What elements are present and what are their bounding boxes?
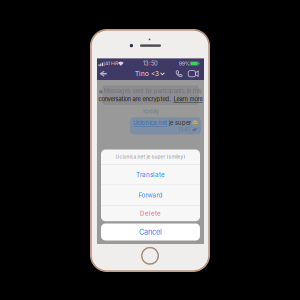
button[interactable]: Back [100,71,107,77]
button[interactable]: Forward [101,185,200,205]
staticText: 13:50 [143,60,158,67]
button[interactable]: Cancel [101,223,200,240]
staticText: Messages sent by participants in this [104,88,202,95]
staticText: Tino <3 [135,70,159,77]
staticText: Translate [136,171,165,178]
staticText: Ucionica.net [133,119,167,127]
button[interactable]: Voice call [175,70,182,77]
staticText: Ucionica.net je super (smiley) [115,154,185,160]
staticText: 13:47 [179,127,191,132]
staticText: Forward [138,191,162,199]
staticText: Cancel [139,228,162,236]
button[interactable]: Delete [101,206,200,221]
button[interactable]: Tino <3 [133,69,167,78]
staticText: Today [142,108,159,115]
staticText: Delete [140,210,161,217]
button[interactable]: Video call [188,71,198,77]
staticText: je super [169,119,191,127]
staticText: 99% [179,60,190,67]
button[interactable]: Translate [101,165,200,185]
staticText: A1 HR [105,60,118,67]
staticText: conversation are encrypted. Learn more [98,96,202,102]
